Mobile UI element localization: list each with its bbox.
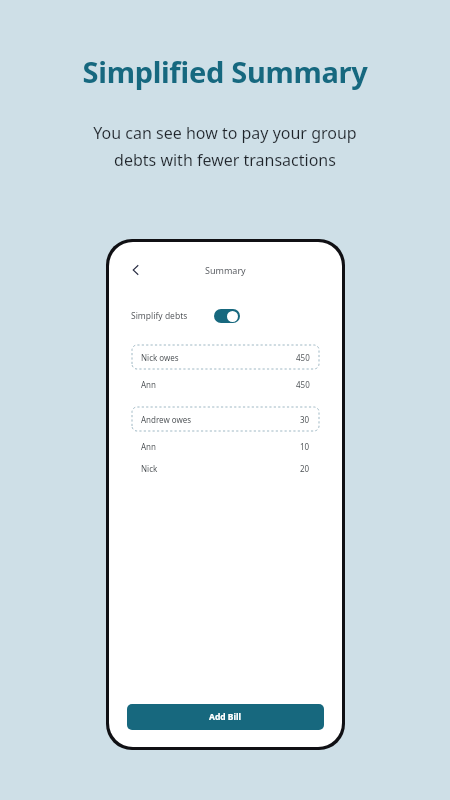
staticText: 20 [300, 463, 310, 474]
staticText: Nick [141, 463, 158, 474]
staticText: Simplify debts [131, 310, 188, 322]
staticText: Summary [205, 264, 246, 276]
button[interactable]: Back [125, 259, 147, 281]
staticText: 450 [296, 352, 310, 363]
staticText: Simplified Summary [0, 52, 450, 91]
button[interactable]: Nick owes [132, 345, 319, 369]
button[interactable]: Ann [141, 377, 310, 391]
staticText: 10 [300, 441, 310, 452]
staticText: Ann [141, 379, 156, 390]
button[interactable]: Simplify debts toggle [214, 309, 240, 323]
button[interactable]: Nick [141, 461, 310, 475]
staticText: 30 [300, 414, 310, 425]
staticText: You can see how to pay your group debts … [36, 122, 414, 171]
staticText: Andrew owes [141, 414, 192, 425]
button[interactable]: Andrew owes [132, 407, 319, 431]
staticText: Add Bill [209, 711, 242, 723]
button[interactable]: Ann [141, 439, 310, 453]
staticText: Nick owes [141, 352, 179, 363]
button[interactable]: Add Bill [127, 704, 324, 730]
staticText: Ann [141, 441, 156, 452]
staticText: 450 [296, 379, 310, 390]
